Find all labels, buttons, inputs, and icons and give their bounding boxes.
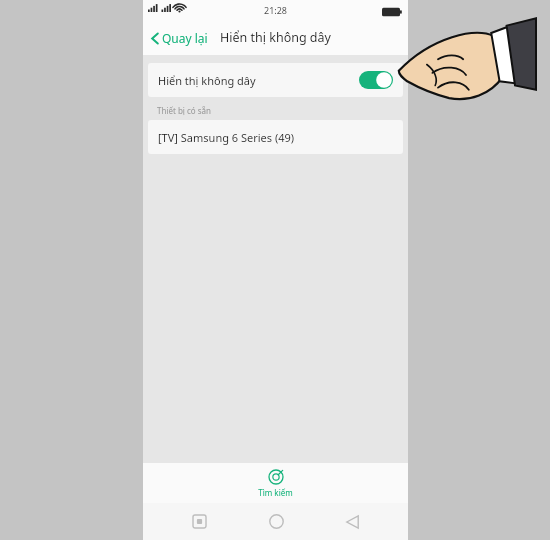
staticText: 21:28 bbox=[264, 4, 288, 16]
button[interactable]: Home bbox=[256, 503, 296, 540]
button[interactable]: Hiển thị không dây bbox=[148, 63, 403, 97]
staticText: Quay lại bbox=[162, 30, 208, 46]
staticText: Thiết bị có sẵn bbox=[157, 105, 212, 116]
button[interactable]: Tìm kiếm bbox=[246, 467, 305, 500]
staticText: Hiển thị không dây bbox=[158, 73, 359, 88]
button[interactable]: [TV] Samsung 6 Series (49) bbox=[148, 120, 403, 154]
staticText: [TV] Samsung 6 Series (49) bbox=[158, 130, 295, 145]
button[interactable]: Wireless display toggle bbox=[359, 71, 393, 89]
staticText: Hiển thị không dây bbox=[220, 29, 331, 46]
button[interactable]: Recent apps bbox=[179, 503, 219, 540]
button[interactable]: Quay lại bbox=[147, 26, 212, 50]
staticText: Tìm kiếm bbox=[258, 487, 293, 498]
button[interactable]: Back bbox=[332, 503, 372, 540]
